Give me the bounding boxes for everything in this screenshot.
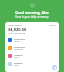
button[interactable]: See all <box>49 24 56 27</box>
staticText: Today <box>14 40 20 43</box>
staticText: Groceries <box>14 37 25 40</box>
staticText: Yesterday <box>14 48 24 51</box>
staticText: Good morning, Alex <box>15 10 49 15</box>
button[interactable]: Transport <box>8 45 56 51</box>
button[interactable]: Add <box>52 65 57 70</box>
staticText: Transport <box>14 45 26 48</box>
staticText: Mar 1 <box>14 64 20 67</box>
staticText: $4,820.50 <box>8 27 27 32</box>
staticText: +2.4% this month <box>8 32 26 35</box>
button[interactable]: Utilities <box>8 53 56 59</box>
button[interactable]: Savings <box>8 61 56 67</box>
button[interactable]: Profile <box>30 3 35 8</box>
staticText: Utilities <box>14 53 23 56</box>
button[interactable]: Groceries <box>8 37 56 43</box>
staticText: Total balance <box>8 24 22 27</box>
staticText: Mar 4 <box>14 56 20 59</box>
staticText: Savings <box>14 61 23 64</box>
staticText: Here is your daily summary <box>15 15 49 19</box>
